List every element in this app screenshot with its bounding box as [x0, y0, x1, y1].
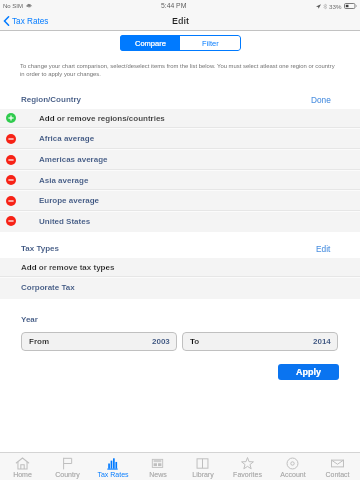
other: Remove — [6, 196, 16, 206]
button[interactable]: Country — [45, 453, 90, 480]
staticText: To change your chart comparison, select/… — [20, 63, 337, 77]
button[interactable]: Library — [180, 453, 225, 480]
button[interactable]: Favorites — [225, 453, 270, 480]
button[interactable]: From — [21, 332, 177, 351]
button[interactable]: Home — [0, 453, 45, 480]
staticText: 2003 — [152, 337, 170, 346]
button[interactable]: To — [182, 332, 338, 351]
other: Remove — [6, 134, 16, 144]
staticText: Filter — [202, 39, 219, 47]
staticText: Library — [192, 471, 214, 479]
button[interactable]: Remove — [0, 212, 360, 230]
staticText: Tax Rates — [97, 471, 129, 479]
button[interactable]: Tax Rates — [4, 16, 49, 26]
button[interactable]: Done — [311, 95, 331, 104]
button[interactable]: Filter — [180, 35, 241, 51]
staticText: Add or remove tax types — [21, 263, 115, 272]
staticText: Asia average — [39, 176, 89, 185]
staticText: Apply — [296, 367, 322, 377]
staticText: Year — [21, 315, 38, 324]
staticText: No SIM — [3, 3, 24, 10]
other: Remove — [6, 175, 16, 185]
staticText: Account — [280, 471, 306, 479]
button[interactable]: Apply — [278, 364, 339, 380]
button[interactable]: Remove — [0, 129, 360, 148]
button[interactable]: Account — [270, 453, 315, 480]
staticText: To — [190, 337, 200, 346]
staticText: 2014 — [313, 337, 331, 346]
staticText: 5:44 PM — [161, 2, 187, 10]
button[interactable]: News — [135, 453, 180, 480]
staticText: Tax Types — [21, 244, 59, 253]
button[interactable]: Corporate Tax — [0, 278, 360, 297]
staticText: United States — [39, 217, 91, 226]
other: Remove — [6, 216, 16, 226]
button[interactable]: Contact — [315, 453, 360, 480]
staticText: Home — [13, 471, 32, 479]
staticText: Africa average — [39, 134, 95, 143]
button[interactable]: Edit — [316, 244, 331, 253]
staticText: Favorites — [233, 471, 262, 479]
button[interactable]: Compare — [120, 35, 180, 51]
other: Add — [6, 113, 16, 123]
staticText: Tax Rates — [12, 17, 49, 26]
button[interactable]: Remove — [0, 150, 360, 169]
staticText: Country — [55, 471, 80, 479]
staticText: Region/Country — [21, 95, 81, 104]
button[interactable]: Remove — [0, 191, 360, 210]
button[interactable]: Add or remove tax types — [0, 258, 360, 276]
button[interactable]: Tax Rates — [90, 453, 135, 480]
staticText: 33% — [329, 3, 342, 10]
staticText: Add or remove regions/countries — [39, 114, 165, 123]
staticText: News — [149, 471, 167, 479]
staticText: Compare — [135, 39, 166, 47]
staticText: Contact — [325, 471, 350, 479]
staticText: Edit — [172, 16, 189, 26]
button[interactable]: Add — [0, 109, 360, 127]
button[interactable]: Remove — [0, 171, 360, 189]
staticText: Corporate Tax — [21, 283, 75, 292]
staticText: Europe average — [39, 196, 100, 205]
other: Remove — [6, 155, 16, 165]
staticText: From — [29, 337, 49, 346]
staticText: Americas average — [39, 155, 108, 164]
